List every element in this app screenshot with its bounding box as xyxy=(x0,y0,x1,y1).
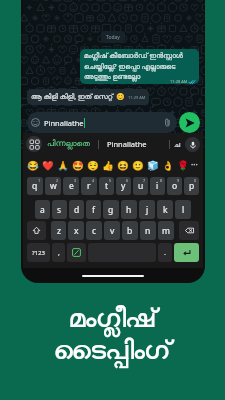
button[interactable]: Emoji xyxy=(85,160,100,171)
button[interactable]: h xyxy=(121,200,137,219)
staticText: l xyxy=(182,204,185,216)
staticText: 🌹 xyxy=(177,160,189,171)
staticText: 0 xyxy=(194,178,197,183)
button[interactable]: p xyxy=(184,177,199,195)
button[interactable]: v xyxy=(104,221,120,240)
staticText: 3 xyxy=(74,178,77,183)
button[interactable]: Emoji xyxy=(40,160,55,171)
staticText: i xyxy=(156,180,159,192)
button[interactable]: Pinnaliathe xyxy=(27,112,177,133)
button[interactable]: ?123 xyxy=(27,243,50,262)
staticText: Today xyxy=(106,34,120,41)
button[interactable]: Send xyxy=(179,112,200,133)
button[interactable]: x xyxy=(68,221,84,240)
staticText: p xyxy=(189,180,195,192)
button[interactable]: പിന്നല്ലാതെ xyxy=(46,140,91,148)
button[interactable]: q xyxy=(27,177,43,195)
staticText: 😊 xyxy=(116,93,125,101)
staticText: a xyxy=(40,204,45,216)
button[interactable]: r xyxy=(81,177,97,195)
button[interactable]: Emoji xyxy=(160,160,175,171)
button[interactable]: Emoji xyxy=(25,160,40,171)
staticText: 2 xyxy=(56,178,59,183)
staticText: q xyxy=(32,180,38,192)
staticText: മംഗ്ലീഷ് കീബോർഡ് ഇൻസ്റ്റാൾ ചെയ്തില്ലേ? ഇ… xyxy=(84,51,195,81)
button[interactable]: y xyxy=(116,177,131,195)
staticText: Pinnaliathe xyxy=(44,118,84,128)
button[interactable]: Apps xyxy=(26,136,42,152)
button[interactable]: w xyxy=(45,177,61,195)
button[interactable]: o xyxy=(167,177,182,195)
staticText: 😂 xyxy=(27,160,39,171)
button[interactable]: Enter xyxy=(174,243,199,262)
button[interactable]: Emoji xyxy=(100,160,115,171)
staticText: v xyxy=(110,225,115,237)
button[interactable]: m xyxy=(158,221,174,240)
staticText: t xyxy=(105,180,109,192)
staticText: 9 xyxy=(177,178,180,183)
staticText: ച xyxy=(174,141,181,148)
staticText: 👍 xyxy=(102,160,114,171)
staticText: പിന്നല്ലാതെ xyxy=(47,140,90,148)
staticText: b xyxy=(127,225,133,237)
staticText: o xyxy=(172,180,178,192)
button[interactable]: . xyxy=(158,243,172,262)
button[interactable]: g xyxy=(103,200,119,219)
staticText: h xyxy=(126,204,132,216)
button[interactable]: d xyxy=(69,200,84,219)
button[interactable]: Voice input xyxy=(185,137,200,152)
button[interactable]: മംഗ്ലീഷ് കീബോർഡ് ഇൻസ്റ്റാൾ ചെയ്തില്ലേ? ഇ… xyxy=(80,49,199,84)
staticText: 🙏 xyxy=(57,160,69,171)
button[interactable]: Emoji xyxy=(175,160,190,171)
button[interactable]: Emoji xyxy=(130,160,145,171)
button[interactable]: Emoji xyxy=(70,160,85,171)
button[interactable]: Backspace xyxy=(179,221,199,240)
staticText: f xyxy=(92,204,95,216)
staticText: 11:29 AM xyxy=(128,95,146,100)
staticText: ••• xyxy=(191,161,198,169)
button[interactable]: a xyxy=(35,200,50,219)
button[interactable]: Emoji xyxy=(145,160,160,171)
staticText: j xyxy=(146,204,149,216)
button[interactable]: l xyxy=(175,200,191,219)
button[interactable]: k xyxy=(157,200,173,219)
button[interactable]: Emoji xyxy=(115,160,130,171)
button[interactable]: More emoji xyxy=(190,161,199,169)
staticText: ?123 xyxy=(32,249,45,257)
button[interactable]: , xyxy=(52,243,65,262)
button[interactable]: n xyxy=(140,221,156,240)
button[interactable]: e xyxy=(63,177,79,195)
staticText: ടൈപ്പിംഗ് xyxy=(54,338,171,364)
staticText: 🧊 xyxy=(147,160,159,171)
staticText: , xyxy=(58,248,60,258)
staticText: k xyxy=(163,204,168,216)
staticText: x xyxy=(74,225,79,237)
staticText: 11:28 AM xyxy=(170,79,188,84)
staticText: 4 xyxy=(92,178,95,183)
button[interactable]: z xyxy=(51,221,66,240)
button[interactable]: f xyxy=(86,200,101,219)
staticText: r xyxy=(87,180,91,192)
staticText: u xyxy=(138,180,144,192)
staticText: ❤️ xyxy=(42,160,54,171)
button[interactable] xyxy=(67,243,86,262)
staticText: 6 xyxy=(126,178,129,183)
staticText: w xyxy=(50,180,57,192)
button[interactable]: j xyxy=(139,200,155,219)
staticText: s xyxy=(57,204,62,216)
button[interactable]: t xyxy=(99,177,114,195)
button[interactable]: Shift xyxy=(27,221,46,240)
staticText: 😌 xyxy=(87,160,99,171)
button[interactable]: c xyxy=(86,221,102,240)
staticText: 🤩 xyxy=(72,160,84,171)
button[interactable]: Pinnallathe xyxy=(106,139,148,149)
button[interactable]: ആ കിളി കിളി, ഇത് സെറ്റ് xyxy=(27,89,149,105)
button[interactable]: s xyxy=(52,200,67,219)
button[interactable]: b xyxy=(122,221,138,240)
button[interactable]: i xyxy=(150,177,165,195)
staticText: 😆 xyxy=(117,160,129,171)
button[interactable]: u xyxy=(133,177,148,195)
button[interactable]: Emoji xyxy=(55,160,70,171)
staticText: n xyxy=(145,225,151,237)
